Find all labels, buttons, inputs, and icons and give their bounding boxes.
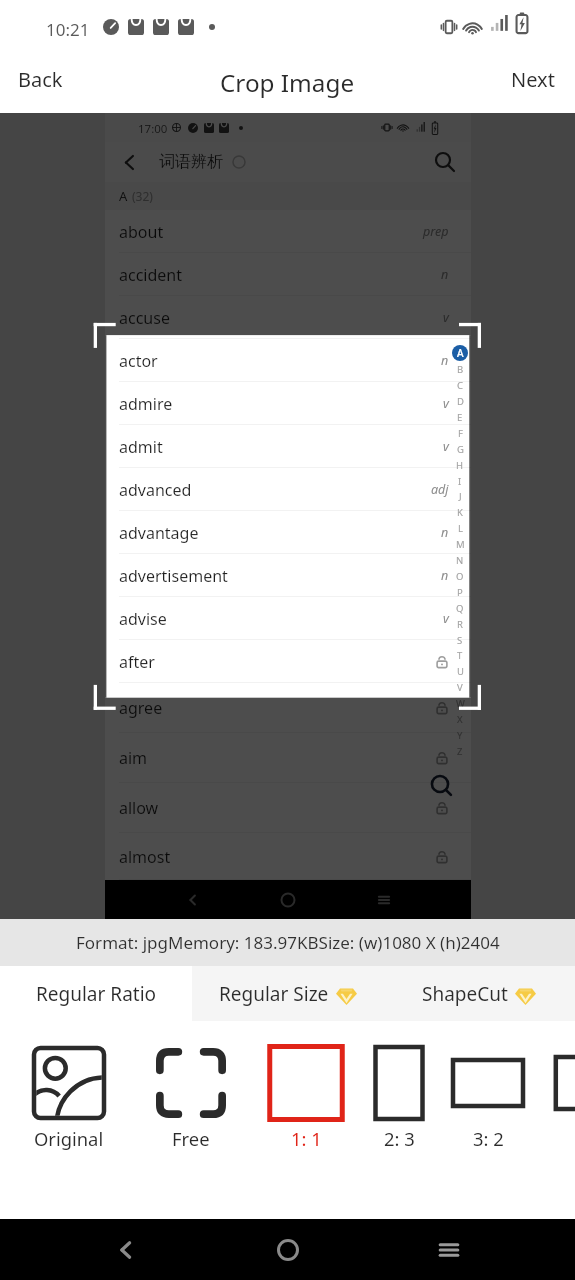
staticText: v xyxy=(443,309,449,326)
staticText: advanced xyxy=(119,479,192,501)
staticText: admit xyxy=(119,436,163,458)
button[interactable]: 2: 3 xyxy=(339,1021,459,1157)
button[interactable]: Home xyxy=(253,1219,323,1280)
staticText: Next xyxy=(511,66,555,93)
staticText: D xyxy=(457,395,464,408)
staticText: v xyxy=(443,395,449,412)
staticText: V xyxy=(457,681,463,694)
button[interactable] xyxy=(542,1021,575,1157)
staticText: n xyxy=(441,567,449,584)
button[interactable]: ShapeCut xyxy=(383,966,575,1021)
staticText: Z xyxy=(457,745,463,758)
staticText: P xyxy=(457,586,463,599)
staticText: O xyxy=(456,570,464,583)
button[interactable]: Next xyxy=(490,55,575,103)
staticText: T xyxy=(457,649,463,662)
staticText: R xyxy=(457,618,463,631)
staticText: I xyxy=(458,475,462,488)
staticText: advantage xyxy=(119,522,199,544)
staticText: E xyxy=(457,411,463,424)
staticText: K xyxy=(457,506,463,519)
staticText: 10:21 xyxy=(46,18,90,41)
staticText: aim xyxy=(119,747,148,769)
staticText: Crop Image xyxy=(220,66,355,99)
button[interactable]: Back xyxy=(0,55,81,103)
button[interactable]: Original xyxy=(9,1021,129,1157)
button[interactable]: Regular Size xyxy=(192,966,383,1021)
staticText: J xyxy=(459,490,462,503)
staticText: allow xyxy=(119,797,159,819)
staticText: ShapeCut xyxy=(422,981,508,1007)
staticText: B xyxy=(457,363,464,376)
staticText: 词语辨析 xyxy=(159,152,223,172)
staticText: n xyxy=(441,266,449,283)
button[interactable]: Back xyxy=(91,1219,161,1280)
staticText: C xyxy=(457,379,464,392)
staticText: Q xyxy=(456,602,464,615)
staticText: Regular Size xyxy=(219,981,329,1007)
staticText: 2: 3 xyxy=(384,1126,415,1151)
staticText: accident xyxy=(119,264,182,286)
staticText: Original xyxy=(34,1126,104,1151)
staticText: 3: 2 xyxy=(473,1126,504,1151)
staticText: n xyxy=(441,524,449,541)
staticText: agree xyxy=(119,697,163,719)
staticText: advise xyxy=(119,608,167,630)
staticText: Y xyxy=(457,729,463,742)
staticText: U xyxy=(457,665,464,678)
staticText: S xyxy=(457,634,463,647)
staticText: Free xyxy=(172,1126,210,1151)
staticText: Format: jpgMemory: 183.97KBSize: (w)1080… xyxy=(76,931,500,954)
staticText: accuse xyxy=(119,307,170,329)
staticText: after xyxy=(119,651,155,673)
staticText: n xyxy=(441,352,449,369)
staticText: X xyxy=(457,713,463,726)
staticText: adj xyxy=(431,481,449,498)
staticText: v xyxy=(443,438,449,455)
button[interactable]: 3: 2 xyxy=(428,1021,548,1157)
staticText: (32) xyxy=(132,188,153,204)
button[interactable]: Recent apps xyxy=(414,1219,484,1280)
staticText: Back xyxy=(18,66,63,93)
staticText: actor xyxy=(119,350,158,372)
staticText: L xyxy=(458,522,463,535)
staticText: H xyxy=(456,459,464,472)
staticText: N xyxy=(456,554,464,567)
staticText: Regular Ratio xyxy=(36,981,157,1007)
staticText: prep xyxy=(423,223,449,240)
button[interactable]: Free xyxy=(131,1021,251,1157)
staticText: almost xyxy=(119,846,171,868)
staticText: advertisement xyxy=(119,565,228,587)
staticText: 17:00 xyxy=(138,121,168,137)
staticText: F xyxy=(458,427,463,440)
staticText: admire xyxy=(119,393,173,415)
staticText: about xyxy=(119,221,164,243)
staticText: M xyxy=(456,538,465,551)
button[interactable]: 1: 1 xyxy=(246,1021,366,1157)
staticText: A xyxy=(457,346,464,360)
staticText: 1: 1 xyxy=(291,1126,322,1151)
staticText: A xyxy=(119,187,128,205)
staticText: W xyxy=(456,697,465,710)
staticText: v xyxy=(443,610,449,627)
button[interactable]: Regular Ratio xyxy=(0,966,192,1021)
staticText: G xyxy=(457,443,464,456)
